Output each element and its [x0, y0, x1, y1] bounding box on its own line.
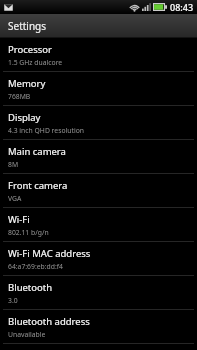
button[interactable]: Memory [0, 72, 197, 106]
staticText: Display [8, 111, 41, 124]
staticText: 3.0 [8, 296, 18, 305]
staticText: 802.11 b/g/n [8, 228, 49, 237]
staticText: Bluetooth [8, 281, 53, 294]
staticText: Bluetooth address [8, 315, 90, 328]
staticText: Front camera [8, 179, 68, 192]
button[interactable]: Bluetooth address [0, 310, 197, 344]
staticText: Settings [8, 19, 47, 33]
button[interactable]: Bluetooth [0, 276, 197, 310]
staticText: Wi-Fi [8, 213, 30, 226]
staticText: Memory [8, 77, 46, 90]
button[interactable]: Display [0, 106, 197, 140]
staticText: 4.3 inch QHD resolution [8, 126, 84, 135]
button[interactable]: Main camera [0, 140, 197, 174]
button[interactable]: Processor [0, 38, 197, 72]
staticText: Wi-Fi MAC address [8, 247, 91, 260]
staticText: 8M [8, 160, 19, 169]
staticText: Unavailable [8, 330, 46, 339]
staticText: VGA [8, 194, 22, 203]
staticText: 08:43 [170, 1, 194, 13]
staticText: 64:a7:69:eb:dd:f4 [8, 262, 63, 271]
button[interactable]: Front camera [0, 174, 197, 208]
staticText: Main camera [8, 145, 66, 158]
staticText: Processor [8, 43, 52, 56]
button[interactable]: Wi-Fi [0, 208, 197, 242]
staticText: 1.5 GHz dualcore [8, 58, 63, 67]
button[interactable]: Wi-Fi MAC address [0, 242, 197, 276]
staticText: 768MB [8, 92, 31, 101]
